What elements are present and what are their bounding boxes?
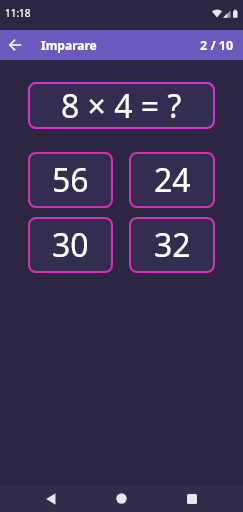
staticText: 24 [154, 158, 191, 202]
button[interactable] [101, 485, 142, 512]
staticText: Imparare [41, 37, 97, 53]
button[interactable]: 32 [129, 217, 215, 273]
staticText: 11:18 [5, 6, 31, 20]
button[interactable] [30, 485, 71, 512]
staticText: 2 / 10 [200, 37, 234, 54]
button[interactable]: 30 [28, 217, 113, 273]
staticText: 8 × 4 = ? [61, 84, 182, 128]
button[interactable]: 24 [129, 152, 215, 208]
staticText: 32 [154, 223, 191, 267]
button[interactable]: 56 [28, 152, 113, 208]
button[interactable] [171, 485, 212, 512]
staticText: 56 [52, 158, 89, 202]
button[interactable] [0, 30, 30, 60]
staticText: 30 [52, 223, 89, 267]
